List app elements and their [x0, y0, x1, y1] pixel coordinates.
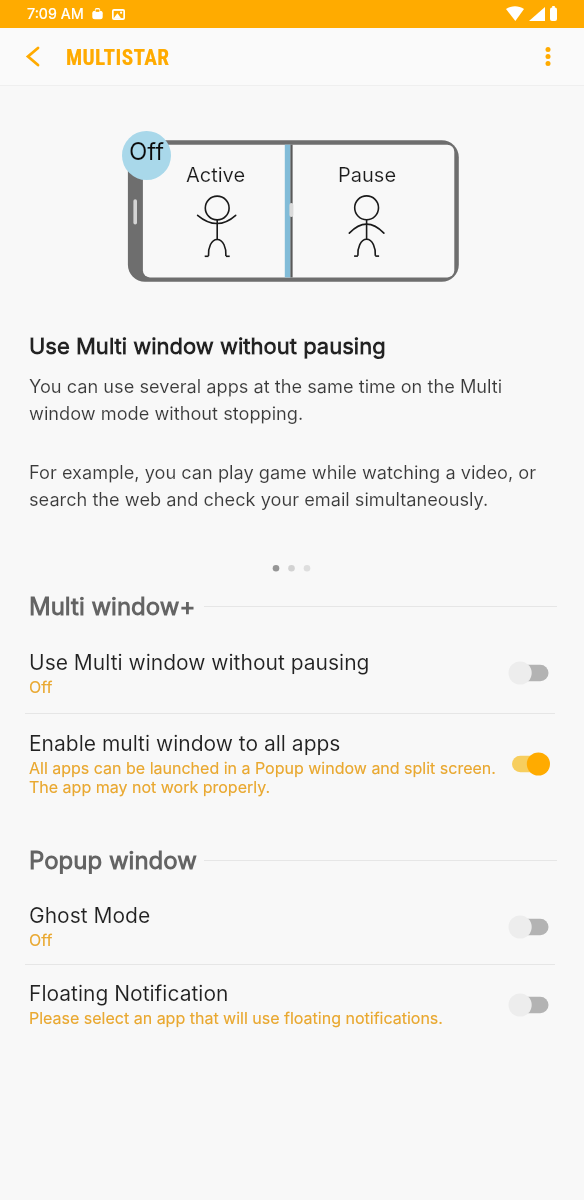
- button[interactable]: [0, 714, 584, 814]
- staticText: Multi window+: [29, 592, 196, 621]
- button[interactable]: [0, 632, 584, 713]
- button[interactable]: Navigate up: [4, 28, 62, 85]
- staticText: Popup window: [29, 846, 197, 875]
- staticText: 7:09 AM: [27, 5, 84, 22]
- staticText: Off: [29, 930, 53, 949]
- staticText: Off: [29, 677, 53, 696]
- staticText: Enable multi window to all apps: [29, 731, 341, 756]
- button[interactable]: Floating Notification, off: [506, 991, 552, 1019]
- staticText: Use Multi window without pausing: [29, 333, 386, 360]
- staticText: The app may not work properly.: [29, 777, 271, 796]
- button[interactable]: More options: [524, 28, 572, 85]
- staticText: All apps can be launched in a Popup wind…: [29, 758, 496, 777]
- staticText: Use Multi window without pausing: [29, 650, 370, 675]
- button[interactable]: [0, 883, 584, 964]
- staticText: For example, you can play game while wat…: [29, 461, 554, 511]
- staticText: Pause: [338, 163, 397, 187]
- staticText: Off: [129, 137, 165, 166]
- button[interactable]: Enable multi window to all apps, on: [506, 750, 552, 778]
- staticText: You can use several apps at the same tim…: [29, 375, 539, 425]
- button[interactable]: Use Multi window without pausing, off: [506, 659, 552, 687]
- staticText: Please select an app that will use float…: [29, 1008, 443, 1027]
- staticText: Floating Notification: [29, 981, 229, 1006]
- staticText: Ghost Mode: [29, 903, 151, 928]
- button[interactable]: [0, 965, 584, 1046]
- button[interactable]: Ghost Mode, off: [506, 913, 552, 941]
- staticText: MULTISTAR: [66, 45, 170, 70]
- staticText: Active: [186, 163, 246, 187]
